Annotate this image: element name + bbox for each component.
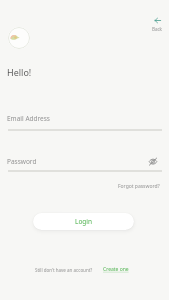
staticText: Login xyxy=(75,217,93,226)
staticText: Hello! xyxy=(7,66,32,78)
staticText: Create one xyxy=(103,266,129,273)
staticText: Back xyxy=(152,26,163,32)
staticText: Still don't have an account? xyxy=(35,267,93,273)
button[interactable]: Forgot password? xyxy=(116,182,162,191)
staticText: Forgot password? xyxy=(118,183,160,190)
staticText: Password xyxy=(7,157,37,166)
button[interactable]: Toggle password visibility xyxy=(145,153,160,169)
button[interactable]: Create one xyxy=(103,266,129,273)
button[interactable]: Login xyxy=(33,213,134,230)
button[interactable]: Back xyxy=(149,15,166,35)
staticText: Email Address xyxy=(7,114,50,123)
